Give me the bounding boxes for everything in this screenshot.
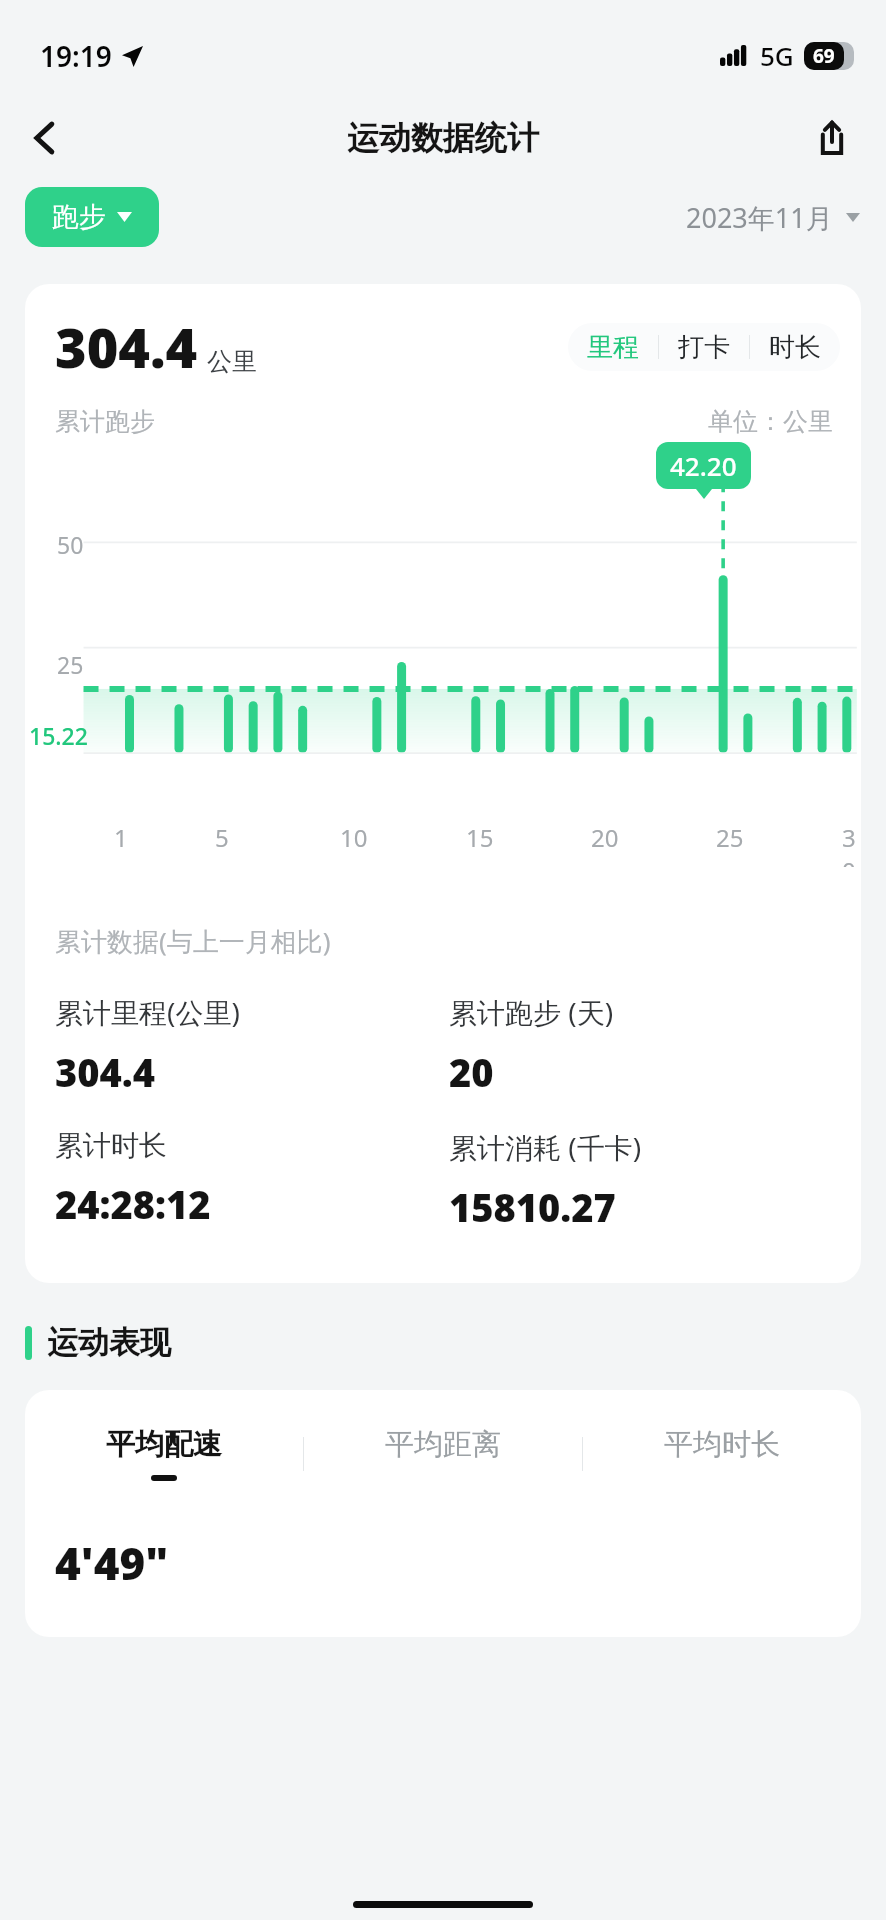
staticText: 平均时长 [664,1426,780,1463]
staticText: 5 [215,821,229,854]
staticText: 25 [716,821,744,854]
staticText: 累计里程(公里) [55,993,240,1031]
staticText: 50 [57,529,84,560]
button[interactable]: 里程 [568,323,658,371]
button[interactable]: 打卡 [659,323,749,371]
staticText: 时长 [769,331,821,364]
button[interactable]: 时长 [750,323,840,371]
button[interactable]: 2023年11月 [678,189,868,246]
staticText: 30 [842,821,861,867]
staticText: 42.20 [670,448,737,483]
staticText: 10 [340,821,368,854]
button[interactable]: 平均配速 [25,1424,303,1483]
staticText: 累计跑步 (天) [449,993,614,1031]
staticText: 69 [813,43,835,69]
staticText: 累计数据(与上一月相比) [55,923,331,959]
staticText: 里程 [587,331,639,364]
staticText: 平均配速 [106,1426,222,1463]
staticText: 单位：公里 [708,406,833,437]
staticText: 运动表现 [47,1323,171,1362]
staticText: 25 [57,649,84,680]
button[interactable]: 平均距离 [304,1424,582,1483]
staticText: 4'49" [55,1533,169,1593]
staticText: 19:19 [40,37,112,75]
button[interactable]: 平均时长 [583,1424,861,1483]
staticText: 运动数据统计 [347,118,539,158]
staticText: 累计时长 [55,1128,167,1163]
staticText: 2023年11月 [686,199,833,236]
staticText: 24:28:12 [55,1178,211,1230]
staticText: 20 [591,821,619,854]
staticText: 累计消耗 (千卡) [449,1128,642,1166]
staticText: 304.4 [55,310,198,384]
staticText: 15810.27 [449,1181,616,1233]
staticText: 5G [760,38,794,73]
staticText: 20 [449,1046,494,1098]
staticText: 累计跑步 [55,406,155,437]
staticText: 打卡 [678,331,730,364]
staticText: 15 [466,821,494,854]
button[interactable]: Back [14,107,76,169]
staticText: 公里 [207,346,257,377]
staticText: 304.4 [55,1046,156,1098]
staticText: 1 [114,821,128,854]
staticText: 跑步 [52,200,106,234]
button[interactable]: 跑步 [25,187,159,247]
staticText: 平均距离 [385,1426,501,1463]
button[interactable]: Share [802,108,862,168]
staticText: 15.22 [29,720,88,751]
